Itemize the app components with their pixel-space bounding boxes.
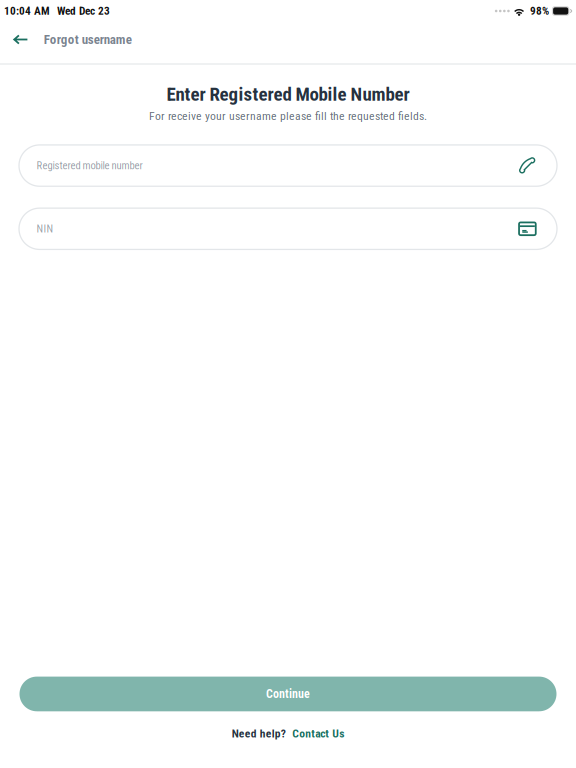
- button[interactable]: Back: [7, 24, 35, 54]
- staticText: Need help?: [232, 727, 286, 740]
- staticText: NIN: [36, 222, 53, 235]
- staticText: Registered mobile number: [36, 159, 142, 172]
- staticText: Contact Us: [292, 727, 344, 740]
- button[interactable]: Contact Us: [292, 727, 344, 740]
- staticText: Wed Dec 23: [57, 4, 110, 18]
- staticText: Continue: [266, 687, 310, 701]
- staticText: Enter Registered Mobile Number: [166, 83, 409, 105]
- button[interactable]: Continue: [19, 677, 556, 711]
- staticText: Forgot username: [44, 32, 132, 47]
- staticText: 98%: [530, 4, 549, 18]
- staticText: 10:04 AM: [4, 4, 50, 18]
- staticText: For receive your username please fill th…: [149, 109, 427, 123]
